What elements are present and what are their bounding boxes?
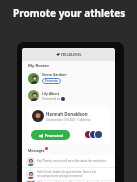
button[interactable]: Hi! I saw your athlete's profile and wan… [22,181,115,182]
staticText: Hannah Donaldson [46,111,88,117]
button[interactable]: Promote [42,78,61,84]
button[interactable]: Promoted [31,130,70,140]
staticText: Lily Albert [42,91,60,96]
button[interactable]: Lily Albert [28,90,109,101]
staticText: Messages [28,148,45,153]
staticText: Promoted [45,133,63,138]
staticText: FIELDLEVEL [61,52,82,57]
button[interactable]: Hannah Donaldson [28,107,111,144]
staticText: My Roster [28,63,50,69]
staticText: Sierra Gardner [42,72,67,77]
staticText: Hey! Thanks, can you tell me a little ab… [37,159,106,163]
button[interactable]: Sierra Gardner [28,72,109,84]
staticText: Hi! I saw your athlete's profile and wan… [37,181,104,182]
staticText: Promote your athletes [13,6,126,20]
staticText: Promoted to [42,97,60,101]
button[interactable]: FieldLevel [22,48,115,61]
button[interactable]: Hey! Thanks, can you tell me a little ab… [22,155,115,167]
button[interactable]: Hello Coach, thanks for your interest. H… [22,168,115,180]
staticText: Uncommitted | HS 2027 | California [46,118,90,122]
staticText: Promote [45,79,58,83]
staticText: Hello Coach, thanks for your interest. H… [37,170,97,178]
